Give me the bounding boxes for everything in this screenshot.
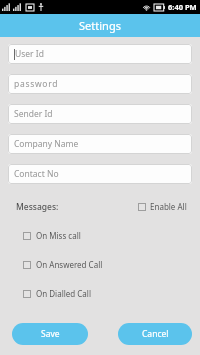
staticText: Enable All: [150, 201, 187, 212]
staticText: User Id: [15, 48, 44, 60]
button[interactable]: Save: [12, 323, 88, 345]
staticText: Company Name: [14, 138, 79, 150]
button[interactable]: Enable All: [137, 199, 188, 214]
button[interactable]: Sender Id: [8, 104, 192, 124]
staticText: Save: [41, 328, 60, 340]
button[interactable]: User Id: [8, 44, 192, 64]
button[interactable]: Cancel: [118, 323, 192, 345]
staticText: On Answered Call: [36, 259, 103, 270]
staticText: password: [14, 78, 59, 90]
staticText: On Dialled Call: [36, 288, 91, 299]
staticText: Messages:: [16, 201, 59, 213]
button[interactable]: On Miss call: [22, 228, 82, 243]
staticText: 6:40 PM: [168, 2, 197, 12]
staticText: Settings: [79, 18, 121, 33]
staticText: Contact No: [14, 168, 59, 180]
button[interactable]: On Dialled Call: [22, 286, 92, 301]
button[interactable]: On Answered Call: [22, 257, 104, 272]
button[interactable]: Contact No: [8, 164, 192, 184]
staticText: On Miss call: [36, 230, 81, 241]
button[interactable]: Company Name: [8, 134, 192, 154]
staticText: Sender Id: [14, 108, 53, 120]
button[interactable]: password: [8, 74, 192, 94]
staticText: Cancel: [142, 328, 169, 340]
